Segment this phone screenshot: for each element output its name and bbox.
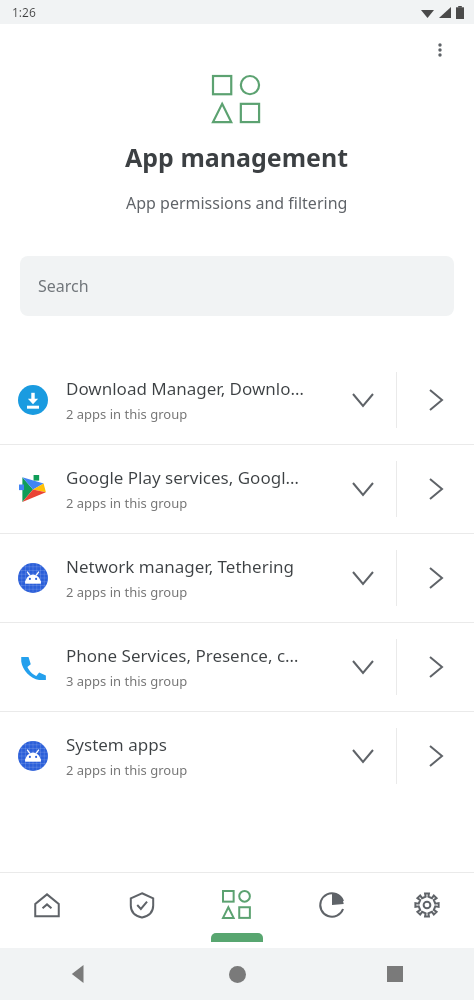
button[interactable]: Expand — [330, 356, 396, 444]
staticText: 2 apps in this group — [66, 583, 188, 601]
button[interactable]: Security — [94, 873, 189, 948]
staticText: 2 apps in this group — [66, 761, 188, 779]
staticText: 3 apps in this group — [66, 672, 188, 690]
button[interactable]: Network manager, Tethering — [0, 534, 474, 622]
button[interactable]: Back — [0, 948, 158, 1000]
button[interactable]: Home — [158, 948, 316, 1000]
staticText: 2 apps in this group — [66, 405, 188, 423]
staticText: System apps — [66, 733, 167, 756]
staticText: Google Play services, Googl… — [66, 466, 299, 489]
staticText: Search — [38, 275, 89, 297]
button[interactable]: Open details — [397, 534, 474, 622]
button[interactable]: System apps — [0, 712, 474, 800]
button[interactable]: Apps — [189, 873, 284, 948]
button[interactable]: More options — [418, 28, 462, 72]
button[interactable]: Expand — [330, 445, 396, 533]
button[interactable]: Settings — [379, 873, 474, 948]
button[interactable]: Search — [20, 256, 454, 316]
button[interactable]: Download Manager, Downlo… — [0, 356, 474, 444]
button[interactable]: Open details — [397, 712, 474, 800]
button[interactable]: Google Play services, Googl… — [0, 445, 474, 533]
staticText: 1:26 — [12, 4, 36, 20]
button[interactable]: Open details — [397, 356, 474, 444]
button[interactable]: Usage — [284, 873, 379, 948]
button[interactable]: Expand — [330, 712, 396, 800]
staticText: 2 apps in this group — [66, 494, 188, 512]
staticText: Network manager, Tethering — [66, 555, 295, 578]
staticText: Download Manager, Downlo… — [66, 377, 304, 400]
button[interactable]: Recent apps — [316, 948, 474, 1000]
button[interactable]: Open details — [397, 623, 474, 711]
button[interactable]: Open details — [397, 445, 474, 533]
button[interactable]: Home — [0, 873, 94, 948]
staticText: Phone Services, Presence, c… — [66, 644, 299, 667]
staticText: App permissions and filtering — [126, 192, 348, 214]
button[interactable]: Expand — [330, 534, 396, 622]
button[interactable]: Phone Services, Presence, c… — [0, 623, 474, 711]
staticText: App management — [125, 140, 349, 174]
button[interactable]: Expand — [330, 623, 396, 711]
